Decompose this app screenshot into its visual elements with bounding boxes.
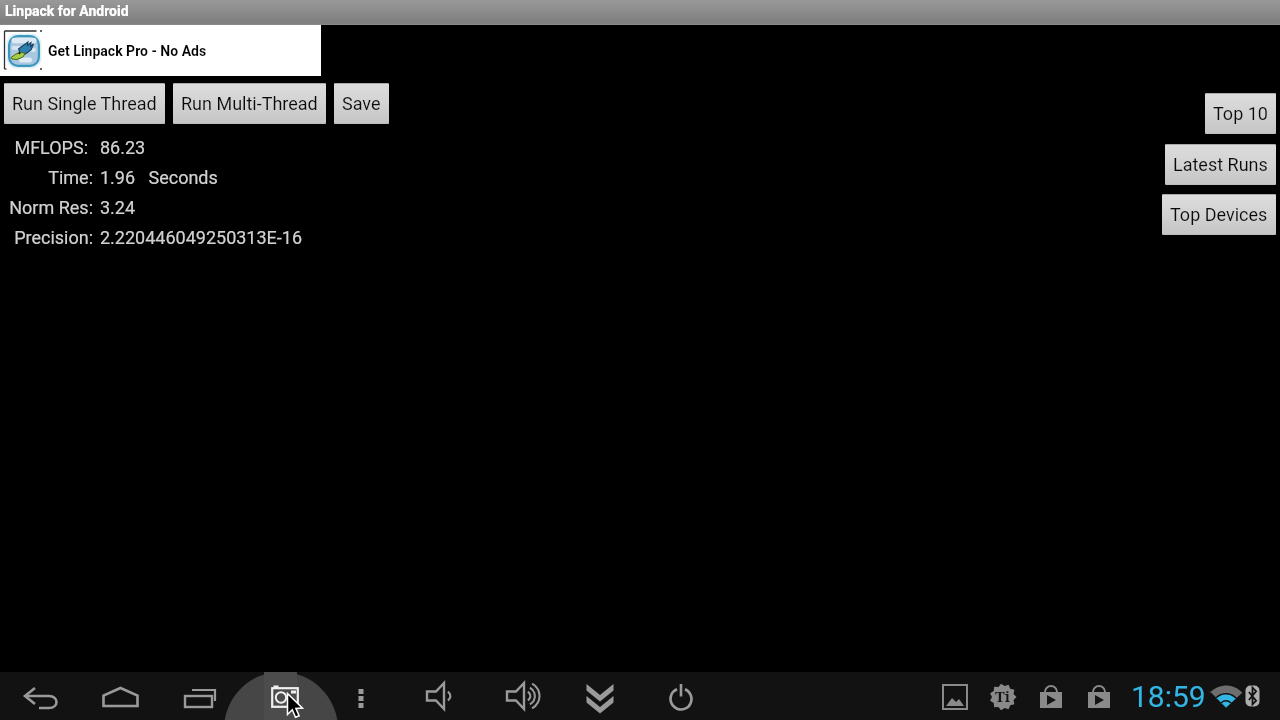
button[interactable]: More options (337, 672, 385, 720)
button[interactable]: Run Multi-Thread (173, 83, 326, 124)
staticText: Run Multi-Thread (181, 93, 318, 114)
staticText: Top 10 (1213, 103, 1268, 124)
staticText: Save (342, 93, 381, 114)
button[interactable]: Get Linpack Pro - No Ads (0, 25, 321, 76)
staticText: Precision: (0, 227, 93, 248)
button[interactable]: Top 10 (1205, 93, 1276, 134)
button[interactable]: Back (16, 672, 64, 720)
staticText: 18:59 (1131, 679, 1206, 714)
button[interactable]: Screenshot (257, 672, 305, 720)
staticText: Linpack for Android (5, 3, 129, 19)
staticText: Norm Res: (0, 197, 93, 218)
staticText: Ti (995, 686, 1011, 706)
button[interactable]: Hide navigation bar (576, 672, 624, 720)
button[interactable]: Power (656, 672, 704, 720)
button[interactable]: Run Single Thread (4, 83, 165, 124)
staticText: Run Single Thread (12, 93, 157, 114)
button[interactable]: Latest Runs (1165, 144, 1276, 185)
staticText: 1.96 Seconds (100, 167, 218, 188)
staticText: MFLOPS: (0, 137, 88, 158)
staticText: 86.23 (100, 137, 146, 158)
button[interactable]: Volume down (415, 672, 463, 720)
staticText: 2.220446049250313E-16 (100, 227, 303, 248)
staticText: Top Devices (1170, 204, 1268, 225)
button[interactable]: Home (96, 672, 144, 720)
button[interactable]: Save (334, 83, 389, 124)
staticText: 3.24 (100, 197, 136, 218)
button[interactable]: Volume up (495, 672, 543, 720)
staticText: Latest Runs (1173, 154, 1268, 175)
staticText: Time: (0, 167, 93, 188)
button[interactable]: Recent apps (176, 672, 224, 720)
staticText: Get Linpack Pro - No Ads (48, 43, 207, 59)
button[interactable]: Top Devices (1162, 194, 1276, 235)
